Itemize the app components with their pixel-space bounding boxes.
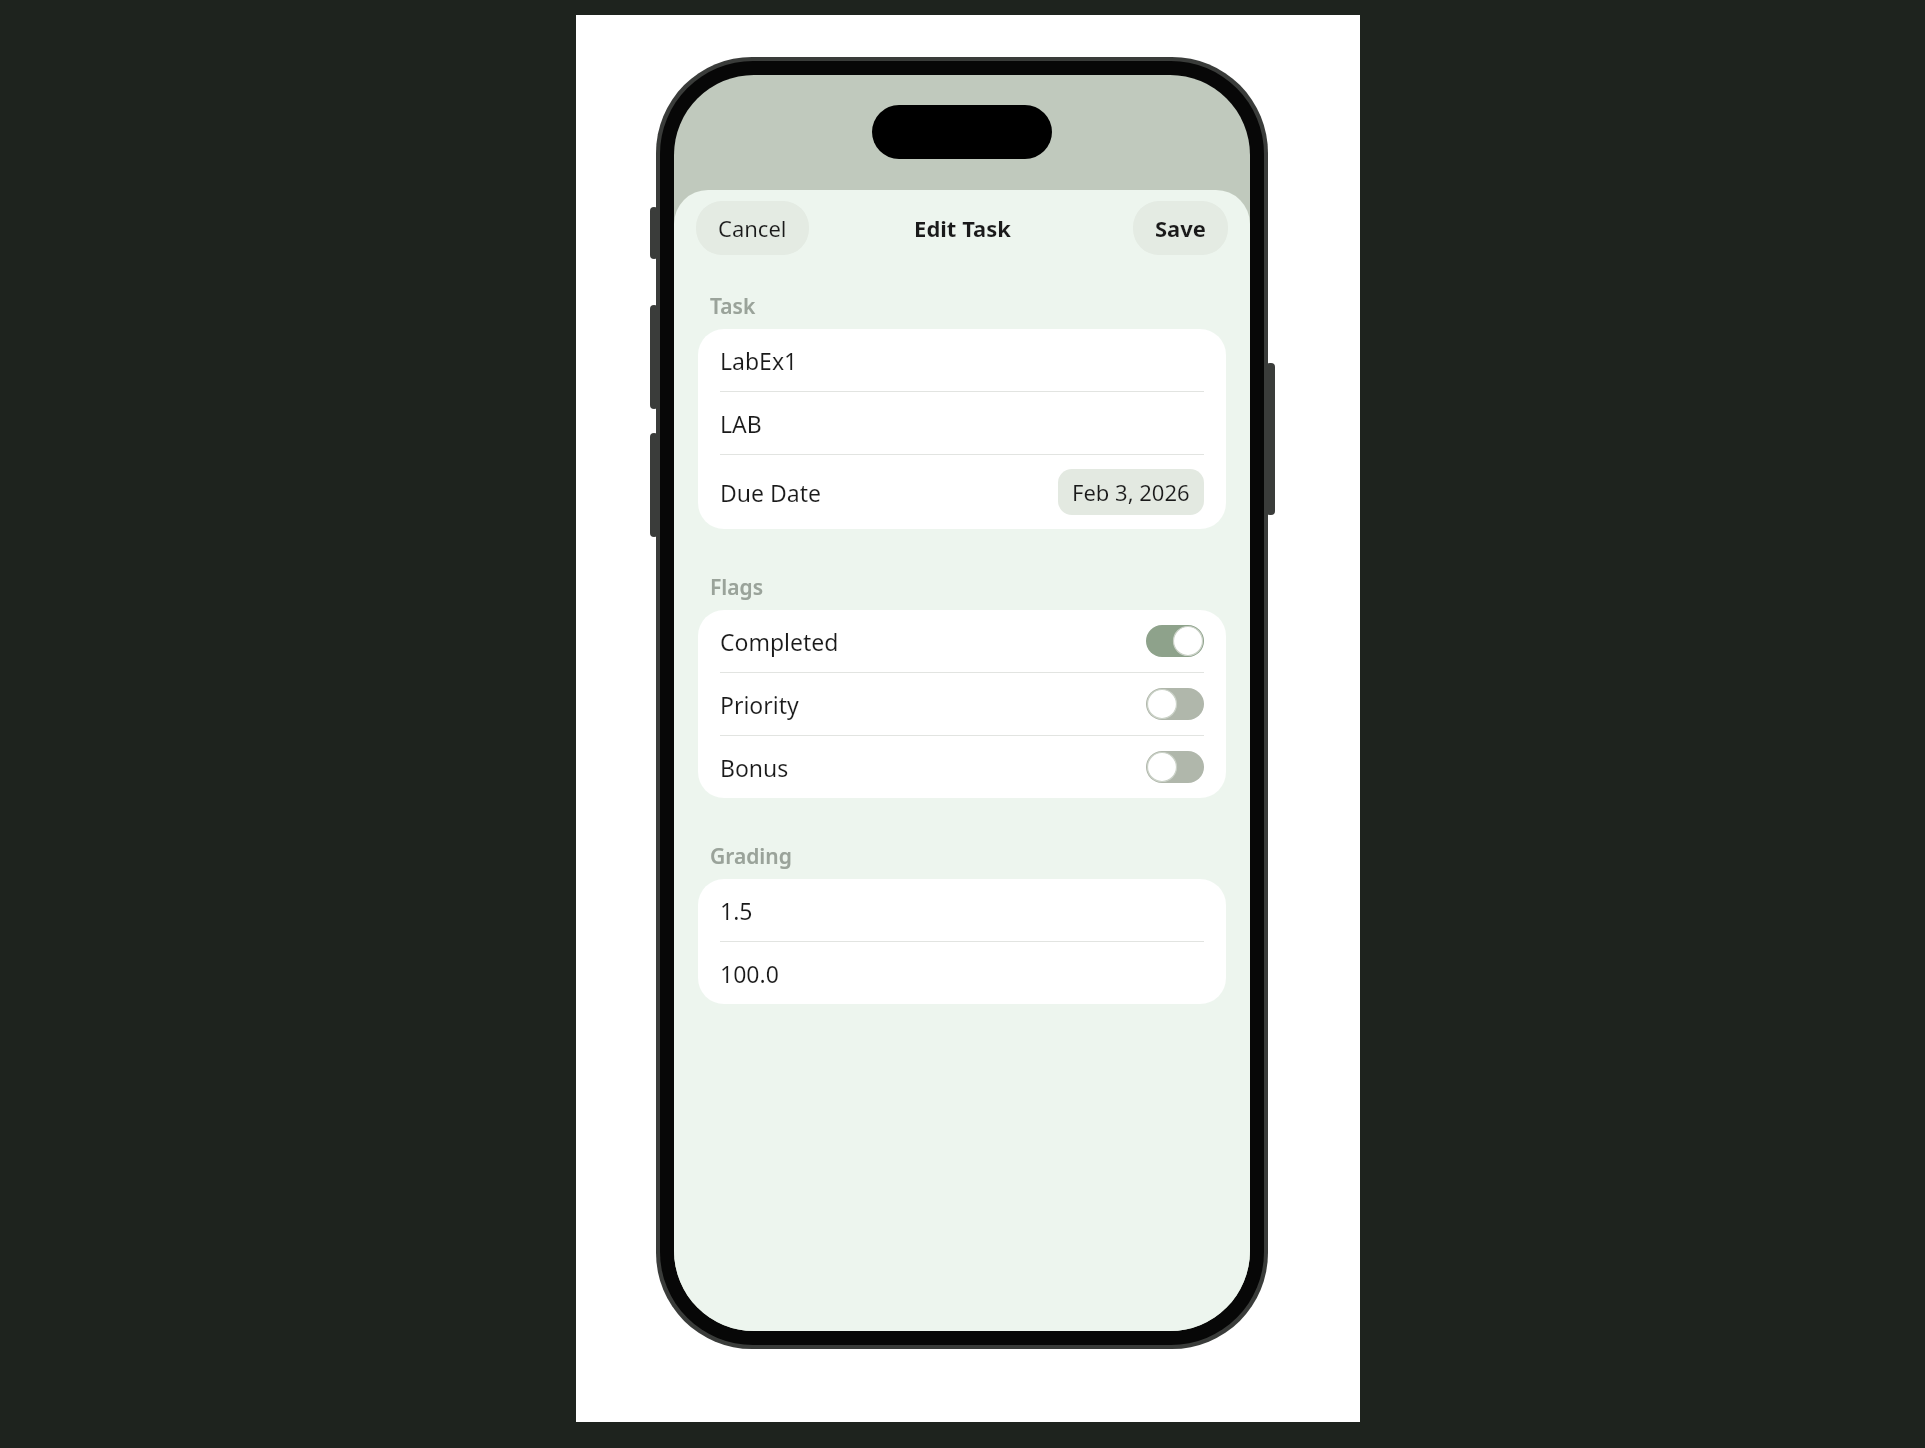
staticText: 1.5 bbox=[720, 895, 753, 926]
staticText: Task bbox=[710, 292, 756, 321]
other: On bbox=[1146, 625, 1204, 657]
button[interactable]: 100.0 bbox=[698, 942, 1226, 1004]
button[interactable]: 1.5 bbox=[698, 879, 1226, 941]
staticText: Feb 3, 2026 bbox=[1072, 477, 1190, 507]
button[interactable]: Bonus bbox=[698, 736, 1226, 798]
staticText: Priority bbox=[720, 689, 799, 720]
staticText: LAB bbox=[720, 408, 762, 439]
other: Off bbox=[1146, 688, 1204, 720]
button[interactable]: LabEx1 bbox=[698, 329, 1226, 391]
staticText: Edit Task bbox=[914, 213, 1011, 243]
staticText: Bonus bbox=[720, 752, 789, 783]
staticText: Due Date bbox=[720, 477, 821, 508]
staticText: Grading bbox=[710, 842, 792, 871]
staticText: Completed bbox=[720, 626, 839, 657]
staticText: Save bbox=[1155, 213, 1206, 243]
staticText: Cancel bbox=[718, 213, 787, 243]
button[interactable]: LAB bbox=[698, 392, 1226, 454]
button[interactable]: Save bbox=[1133, 201, 1228, 255]
staticText: 100.0 bbox=[720, 958, 779, 989]
staticText: LabEx1 bbox=[720, 345, 798, 376]
other: Off bbox=[1146, 751, 1204, 783]
button[interactable]: Completed bbox=[698, 610, 1226, 672]
button[interactable]: Priority bbox=[698, 673, 1226, 735]
button[interactable]: Due Date bbox=[698, 455, 1226, 529]
button[interactable]: Cancel bbox=[696, 201, 809, 255]
staticText: Flags bbox=[710, 573, 764, 602]
